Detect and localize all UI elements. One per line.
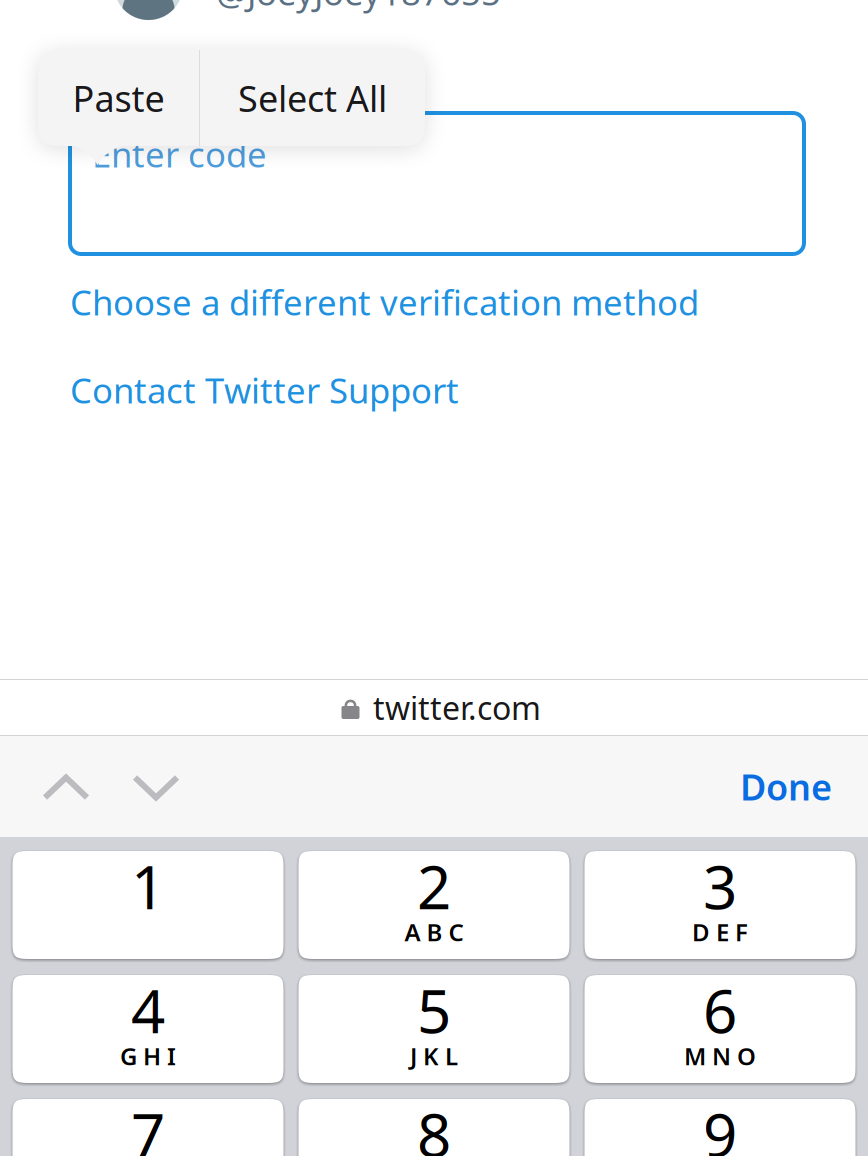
staticText: MNO [684, 1040, 756, 1072]
staticText: 3 [703, 846, 737, 926]
button[interactable]: 5 [298, 975, 569, 1083]
staticText: 8 [417, 1094, 451, 1156]
staticText: Choose a different verification method [70, 279, 699, 325]
staticText: Paste [72, 74, 164, 122]
button[interactable]: 1 [12, 851, 283, 959]
button[interactable]: Select All [200, 50, 425, 146]
staticText: 2 [417, 846, 451, 926]
staticText: 1 [131, 846, 165, 926]
button[interactable]: twitter.com [0, 679, 868, 736]
button[interactable]: 4 [12, 975, 283, 1083]
staticText: twitter.com [373, 686, 541, 729]
button[interactable]: Next field [133, 771, 179, 801]
staticText: 9 [703, 1094, 737, 1156]
button[interactable]: 6 [584, 975, 855, 1083]
staticText: JKL [410, 1040, 458, 1072]
button[interactable]: Paste [38, 50, 199, 146]
staticText: GHI [120, 1040, 176, 1072]
button[interactable]: 2 [298, 851, 569, 959]
staticText: Select All [238, 74, 387, 122]
staticText: Enter code [92, 131, 267, 177]
button[interactable]: Previous field [43, 771, 89, 801]
staticText: Contact Twitter Support [70, 367, 459, 413]
button[interactable]: 7 [12, 1099, 283, 1156]
button[interactable]: Done [740, 763, 832, 810]
staticText: 7 [131, 1094, 165, 1156]
staticText: 5 [417, 970, 451, 1050]
button[interactable]: Choose a different verification method [0, 280, 800, 324]
button[interactable]: 8 [298, 1099, 569, 1156]
button[interactable]: Enter code [0, 113, 804, 254]
button[interactable]: 3 [584, 851, 855, 959]
staticText: Done [740, 763, 832, 810]
staticText: 4 [131, 970, 165, 1050]
staticText: @JoeyJoey187655 [216, 0, 501, 15]
button[interactable]: Contact Twitter Support [0, 368, 800, 412]
staticText: ABC [404, 916, 463, 948]
staticText: 6 [703, 970, 737, 1050]
staticText: DEF [692, 916, 748, 948]
button[interactable]: 9 [584, 1099, 855, 1156]
